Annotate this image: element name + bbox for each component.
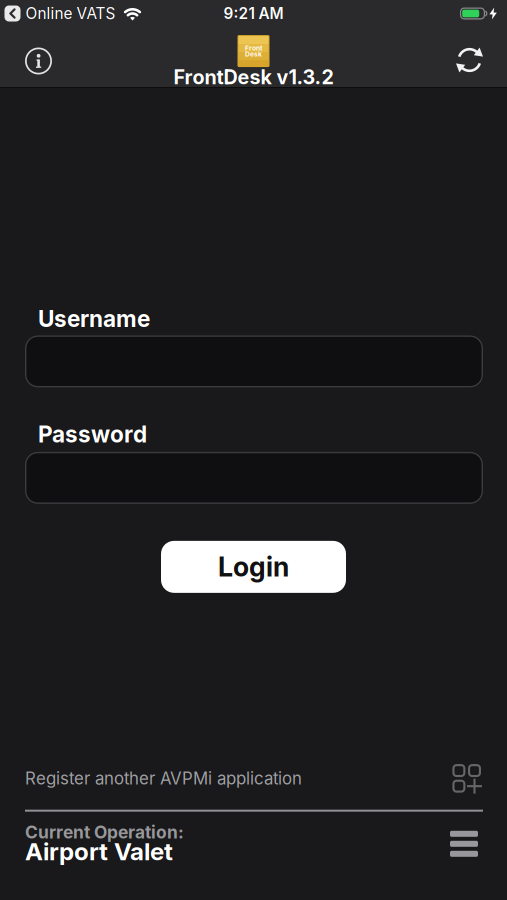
button[interactable]: Password: [0, 452, 507, 504]
button[interactable]: Register another AVPMi application: [0, 764, 507, 793]
button[interactable]: Refresh: [456, 40, 507, 74]
staticText: Desk: [245, 50, 262, 58]
staticText: Current Operation:: [25, 822, 184, 843]
staticText: Online VATS: [25, 4, 115, 23]
button[interactable]: Info: [0, 39, 52, 74]
button[interactable]: Menu: [450, 831, 478, 857]
button[interactable]: Username: [0, 335, 507, 387]
staticText: FrontDesk v1.3.2: [173, 65, 333, 89]
staticText: Login: [218, 551, 289, 583]
staticText: 9:21 AM: [223, 4, 283, 23]
staticText: Password: [38, 420, 147, 448]
staticText: Register another AVPMi application: [25, 768, 302, 788]
staticText: Airport Valet: [25, 837, 173, 866]
staticText: Username: [38, 305, 150, 332]
staticText: Front: [245, 44, 262, 52]
button[interactable]: Login: [161, 541, 346, 593]
